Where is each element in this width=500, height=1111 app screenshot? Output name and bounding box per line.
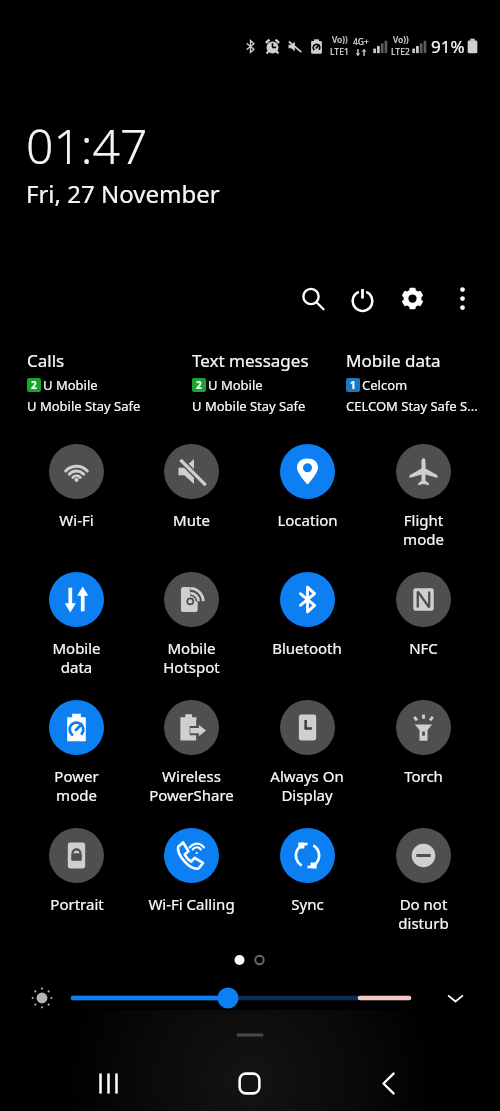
button[interactable]: Recents [81, 1056, 135, 1110]
staticText: Mobile Hotspot [163, 638, 220, 677]
button[interactable]: NFC [365, 567, 481, 658]
button[interactable]: Brightness slider [0, 988, 500, 1008]
button[interactable]: Wireless PowerShare [134, 695, 249, 805]
staticText: 1 [350, 378, 356, 392]
staticText: 91% [431, 35, 465, 58]
staticText: Text messages [192, 349, 309, 372]
button[interactable]: Search [287, 273, 337, 323]
button[interactable]: Wi-Fi [19, 439, 134, 530]
staticText: Mute [173, 510, 210, 530]
staticText: Location [277, 510, 338, 530]
staticText: Flight mode [403, 510, 444, 549]
staticText: 01:47 [26, 113, 148, 178]
staticText: Sync [291, 894, 324, 914]
staticText: 4G+ [353, 36, 369, 48]
button[interactable]: Mobile data [19, 567, 134, 677]
button[interactable]: Do not disturb [365, 823, 481, 933]
button[interactable]: Brightness [24, 980, 60, 1016]
button[interactable]: Flight mode [365, 439, 481, 549]
button[interactable]: Settings [387, 273, 437, 323]
staticText: Do not disturb [398, 894, 449, 933]
staticText: Celcom [362, 376, 408, 394]
staticText: Always On Display [270, 766, 344, 805]
button[interactable]: Wi-Fi Calling [134, 823, 249, 914]
button[interactable]: Mobile Hotspot [134, 567, 249, 677]
button[interactable]: Power mode [19, 695, 134, 805]
button[interactable]: Location [249, 439, 365, 530]
staticText: U Mobile [208, 376, 263, 394]
button[interactable]: Torch [365, 695, 481, 786]
button[interactable]: Mute [134, 439, 249, 530]
staticText: 2 [31, 378, 37, 392]
staticText: U Mobile Stay Safe [192, 397, 306, 415]
staticText: LTE1 [330, 46, 349, 58]
staticText: Mobile data [52, 638, 101, 677]
staticText: CELCOM Stay Safe S... [346, 397, 478, 415]
staticText: LTE2 [391, 46, 410, 58]
staticText: Calls [27, 349, 65, 372]
button[interactable]: Home [222, 1056, 276, 1110]
staticText: Vo)) [332, 34, 348, 46]
button[interactable]: Always On Display [249, 695, 365, 805]
staticText: Bluetooth [272, 638, 342, 658]
button[interactable]: Expand [437, 980, 473, 1016]
button[interactable]: More options [437, 273, 487, 323]
staticText: Vo)) [393, 34, 409, 46]
staticText: 2 [196, 378, 202, 392]
staticText: Fri, 27 November [26, 177, 220, 210]
staticText: Portrait [50, 894, 104, 914]
button[interactable]: Portrait [19, 823, 134, 914]
staticText: Wi-Fi [59, 510, 94, 530]
staticText: Mobile data [346, 349, 441, 372]
staticText: NFC [409, 638, 438, 658]
button[interactable]: Sync [249, 823, 365, 914]
button[interactable]: Back [361, 1056, 415, 1110]
staticText: U Mobile [43, 376, 98, 394]
button[interactable]: Bluetooth [249, 567, 365, 658]
staticText: Power mode [54, 766, 99, 805]
button[interactable]: Power off [337, 273, 387, 323]
staticText: U Mobile Stay Safe [27, 397, 141, 415]
staticText: Torch [404, 766, 443, 786]
staticText: Wi-Fi Calling [148, 894, 235, 914]
staticText: Wireless PowerShare [149, 766, 234, 805]
